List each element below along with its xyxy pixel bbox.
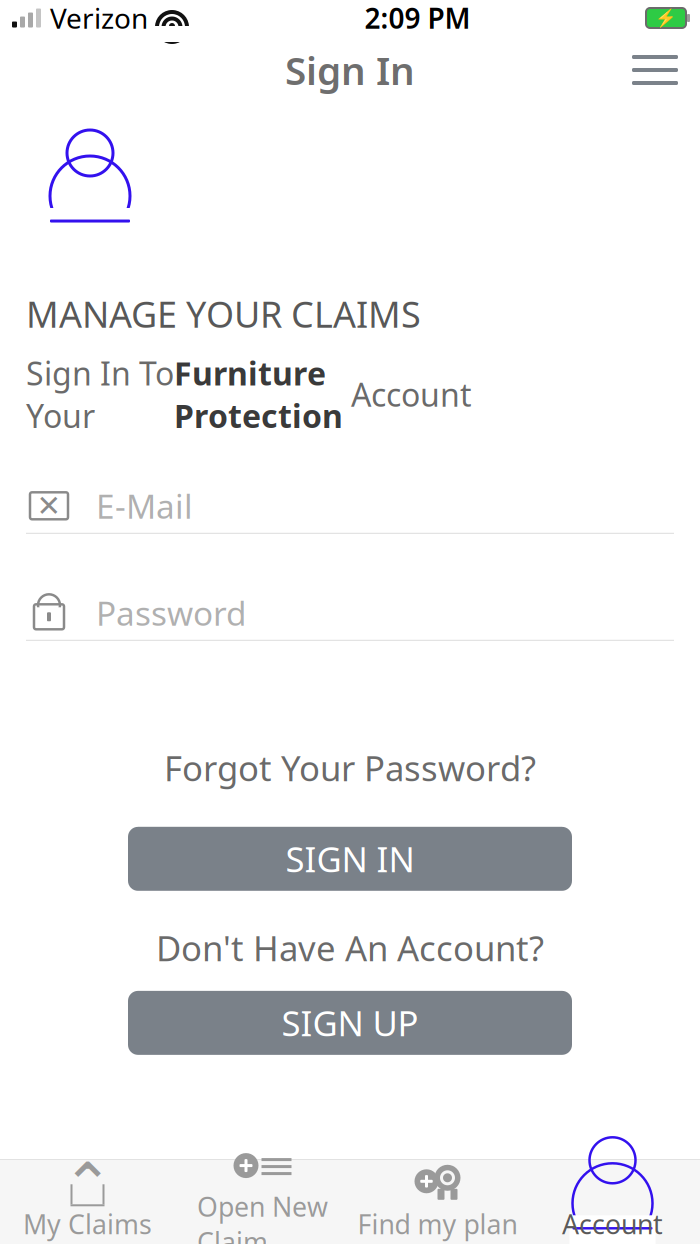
staticText: ⚡ xyxy=(655,8,677,28)
staticText: Don't Have An Account? xyxy=(156,925,544,971)
staticText: Furniture Protection xyxy=(174,352,343,437)
button[interactable]: ⌃ xyxy=(0,1160,175,1244)
button[interactable]: Find my plan xyxy=(350,1160,525,1244)
staticText: Verizon xyxy=(50,0,148,37)
button[interactable]: Account xyxy=(525,1160,700,1244)
button[interactable]: Menu xyxy=(618,43,692,97)
staticText: Account xyxy=(343,373,472,416)
staticText: Account xyxy=(562,1206,663,1242)
staticText: SIGN IN xyxy=(285,836,414,882)
staticText: Sign In xyxy=(285,44,415,96)
staticText: My Claims xyxy=(23,1206,152,1242)
staticText: SIGN UP xyxy=(281,1000,418,1046)
staticText: Open New Claim xyxy=(197,1189,328,1244)
staticText: ⌃ xyxy=(62,1150,113,1220)
button[interactable]: SIGN UP xyxy=(128,991,572,1055)
staticText: ✕ xyxy=(36,489,61,522)
staticText: Forgot Your Password? xyxy=(164,745,536,791)
staticText: Sign In To Your xyxy=(26,352,174,437)
button[interactable]: Forgot Your Password? xyxy=(146,737,554,799)
staticText: Find my plan xyxy=(357,1206,517,1242)
staticText: E-Mail xyxy=(96,484,193,528)
staticText: 2:09 PM xyxy=(364,0,470,37)
staticText: MANAGE YOUR CLAIMS xyxy=(26,290,421,338)
staticText: Password xyxy=(96,591,247,635)
button[interactable]: SIGN IN xyxy=(128,827,572,891)
button[interactable]: Open New Claim xyxy=(175,1160,350,1244)
